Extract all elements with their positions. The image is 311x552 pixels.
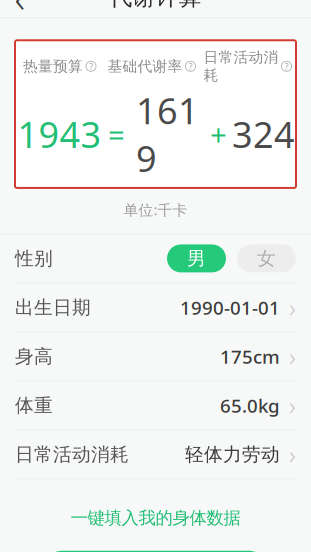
staticText: 基础代谢率 bbox=[107, 57, 182, 75]
staticText: 日常活动消耗 bbox=[15, 443, 129, 466]
button[interactable]: 体重 bbox=[0, 381, 311, 429]
staticText: 单位:千卡 bbox=[123, 200, 187, 219]
staticText: ? bbox=[89, 60, 93, 72]
staticText: = bbox=[108, 115, 125, 154]
staticText: 324 bbox=[232, 110, 295, 158]
staticText: › bbox=[289, 438, 296, 471]
staticText: 身高 bbox=[15, 345, 53, 368]
staticText: 代谢计算 bbox=[109, 0, 201, 11]
button[interactable]: 身高 bbox=[0, 332, 311, 380]
staticText: 1943 bbox=[17, 110, 101, 158]
staticText: 一键填入我的身体数据 bbox=[70, 507, 240, 529]
button[interactable]: 男 bbox=[167, 244, 226, 272]
button[interactable]: Back bbox=[0, 0, 40, 17]
staticText: 男 bbox=[187, 247, 206, 270]
staticText: 热量预算 bbox=[23, 57, 83, 75]
staticText: 性别 bbox=[15, 247, 53, 270]
staticText: › bbox=[289, 291, 296, 324]
staticText: + bbox=[210, 115, 227, 154]
staticText: ‹ bbox=[14, 0, 25, 24]
staticText: 出生日期 bbox=[15, 296, 91, 319]
button[interactable]: 计算 bbox=[40, 551, 271, 552]
staticText: 轻体力劳动 bbox=[185, 443, 280, 466]
staticText: 体重 bbox=[15, 394, 53, 417]
staticText: › bbox=[289, 389, 296, 422]
staticText: ? bbox=[284, 60, 288, 72]
staticText: 日常活动消耗 bbox=[203, 48, 278, 84]
button[interactable]: 日常活动消耗 bbox=[0, 430, 311, 478]
button[interactable]: 出生日期 bbox=[0, 283, 311, 331]
staticText: 65.0kg bbox=[220, 393, 280, 418]
staticText: 女 bbox=[257, 247, 276, 270]
staticText: 1619 bbox=[136, 86, 199, 182]
button[interactable]: 女 bbox=[237, 244, 296, 272]
staticText: 175cm bbox=[220, 344, 280, 369]
staticText: 1990-01-01 bbox=[180, 295, 280, 320]
staticText: › bbox=[289, 340, 296, 373]
button[interactable]: 一键填入我的身体数据 bbox=[50, 497, 260, 539]
staticText: ? bbox=[188, 60, 192, 72]
